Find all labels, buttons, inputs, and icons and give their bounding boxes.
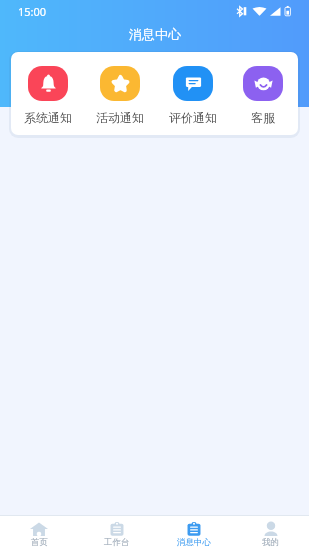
button[interactable]: 首页 [0, 519, 78, 548]
staticText: 评价通知 [169, 110, 217, 125]
button[interactable]: 消息中心 [155, 519, 232, 548]
button[interactable]: 我的 [232, 519, 309, 548]
staticText: 消息中心 [177, 537, 211, 548]
button[interactable]: 工作台 [78, 519, 155, 548]
staticText: 系统通知 [24, 110, 72, 125]
staticText: 活动通知 [96, 110, 144, 125]
button[interactable]: 评价通知 [167, 66, 219, 125]
button[interactable]: 客服 [237, 66, 289, 125]
staticText: 首页 [31, 537, 48, 548]
staticText: 我的 [262, 537, 279, 548]
staticText: 15:00 [18, 4, 47, 19]
button[interactable]: 系统通知 [22, 66, 74, 125]
staticText: 客服 [251, 110, 275, 125]
button[interactable]: 活动通知 [94, 66, 146, 125]
staticText: 工作台 [104, 537, 130, 548]
staticText: 消息中心 [129, 26, 181, 42]
